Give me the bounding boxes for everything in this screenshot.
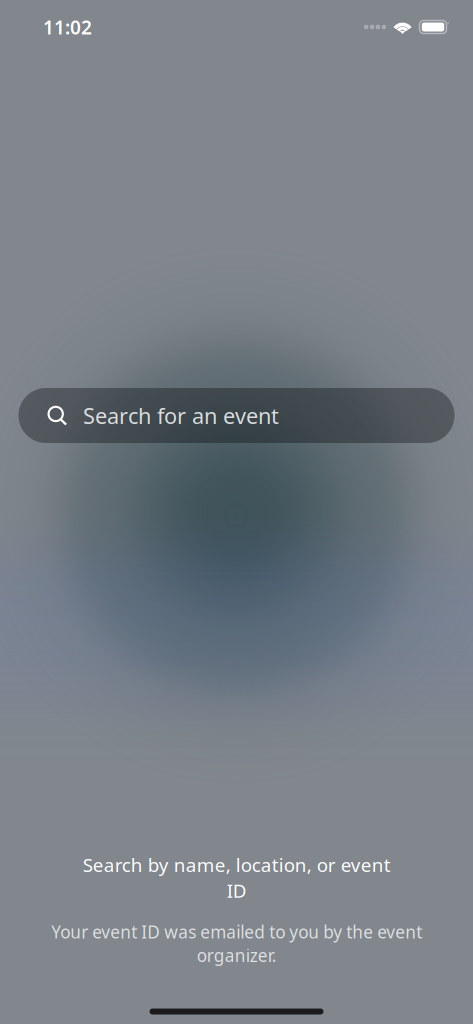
- button[interactable]: Search for an event: [18, 388, 454, 443]
- staticText: 11:02: [43, 14, 92, 40]
- staticText: Search by name, location, or event ID: [82, 852, 390, 903]
- staticText: Search for an event: [83, 401, 279, 430]
- staticText: Your event ID was emailed to you by the …: [51, 920, 422, 967]
